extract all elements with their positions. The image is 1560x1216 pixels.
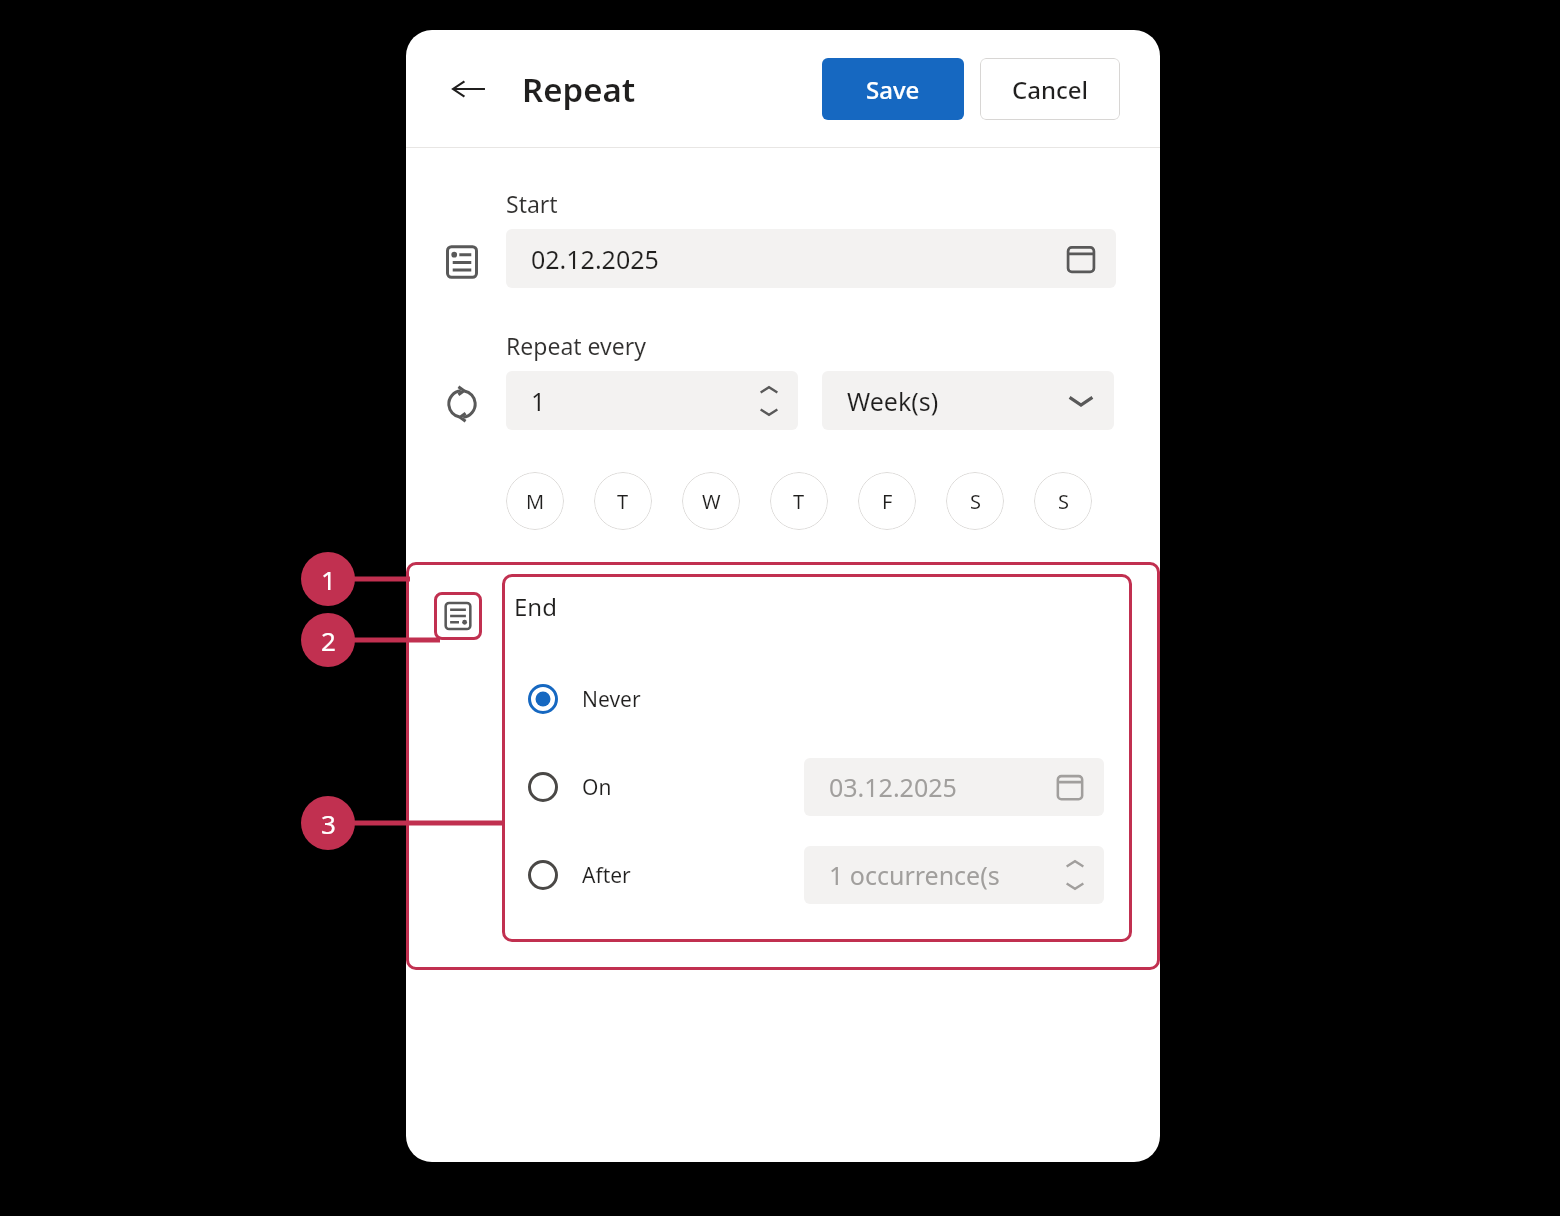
- staticText: F: [882, 488, 893, 515]
- staticText: W: [702, 488, 721, 515]
- staticText: Week(s): [847, 384, 939, 418]
- staticText: Save: [866, 73, 920, 106]
- button[interactable]: Cancel: [980, 58, 1120, 120]
- staticText: T: [617, 488, 629, 515]
- button[interactable]: T: [594, 472, 652, 530]
- staticText: S: [970, 488, 981, 515]
- button[interactable]: Week(s): [822, 371, 1114, 430]
- staticText: 1: [321, 562, 336, 597]
- staticText: 03.12.2025: [829, 770, 957, 804]
- button[interactable]: Never: [502, 667, 1132, 731]
- staticText: End: [514, 590, 557, 623]
- staticText: Repeat: [522, 67, 636, 112]
- staticText: T: [793, 488, 805, 515]
- button[interactable]: T: [770, 472, 828, 530]
- staticText: 1 occurrence(s: [829, 858, 1000, 892]
- button[interactable]: W: [682, 472, 740, 530]
- button[interactable]: S: [946, 472, 1004, 530]
- staticText: Repeat every: [506, 330, 646, 361]
- button[interactable]: 02.12.2025: [506, 229, 1116, 288]
- button[interactable]: F: [858, 472, 916, 530]
- button[interactable]: S: [1034, 472, 1092, 530]
- button[interactable]: 03.12.2025: [804, 758, 1104, 816]
- button[interactable]: On: [502, 755, 1132, 819]
- staticText: 2: [321, 623, 336, 658]
- staticText: Start: [506, 188, 558, 219]
- staticText: S: [1058, 488, 1069, 515]
- button[interactable]: After: [502, 843, 1132, 907]
- button[interactable]: M: [506, 472, 564, 530]
- button[interactable]: 1: [506, 371, 798, 430]
- staticText: M: [526, 488, 545, 515]
- staticText: On: [582, 773, 612, 802]
- staticText: After: [582, 861, 631, 890]
- staticText: 02.12.2025: [531, 242, 659, 276]
- staticText: 3: [321, 806, 336, 841]
- staticText: Never: [582, 685, 641, 714]
- button[interactable]: 1 occurrence(s: [804, 846, 1104, 904]
- button[interactable]: Back: [446, 66, 492, 112]
- staticText: Cancel: [1012, 73, 1089, 106]
- staticText: 1: [531, 384, 546, 418]
- button[interactable]: Pick start date: [1064, 242, 1098, 276]
- button[interactable]: Save: [822, 58, 964, 120]
